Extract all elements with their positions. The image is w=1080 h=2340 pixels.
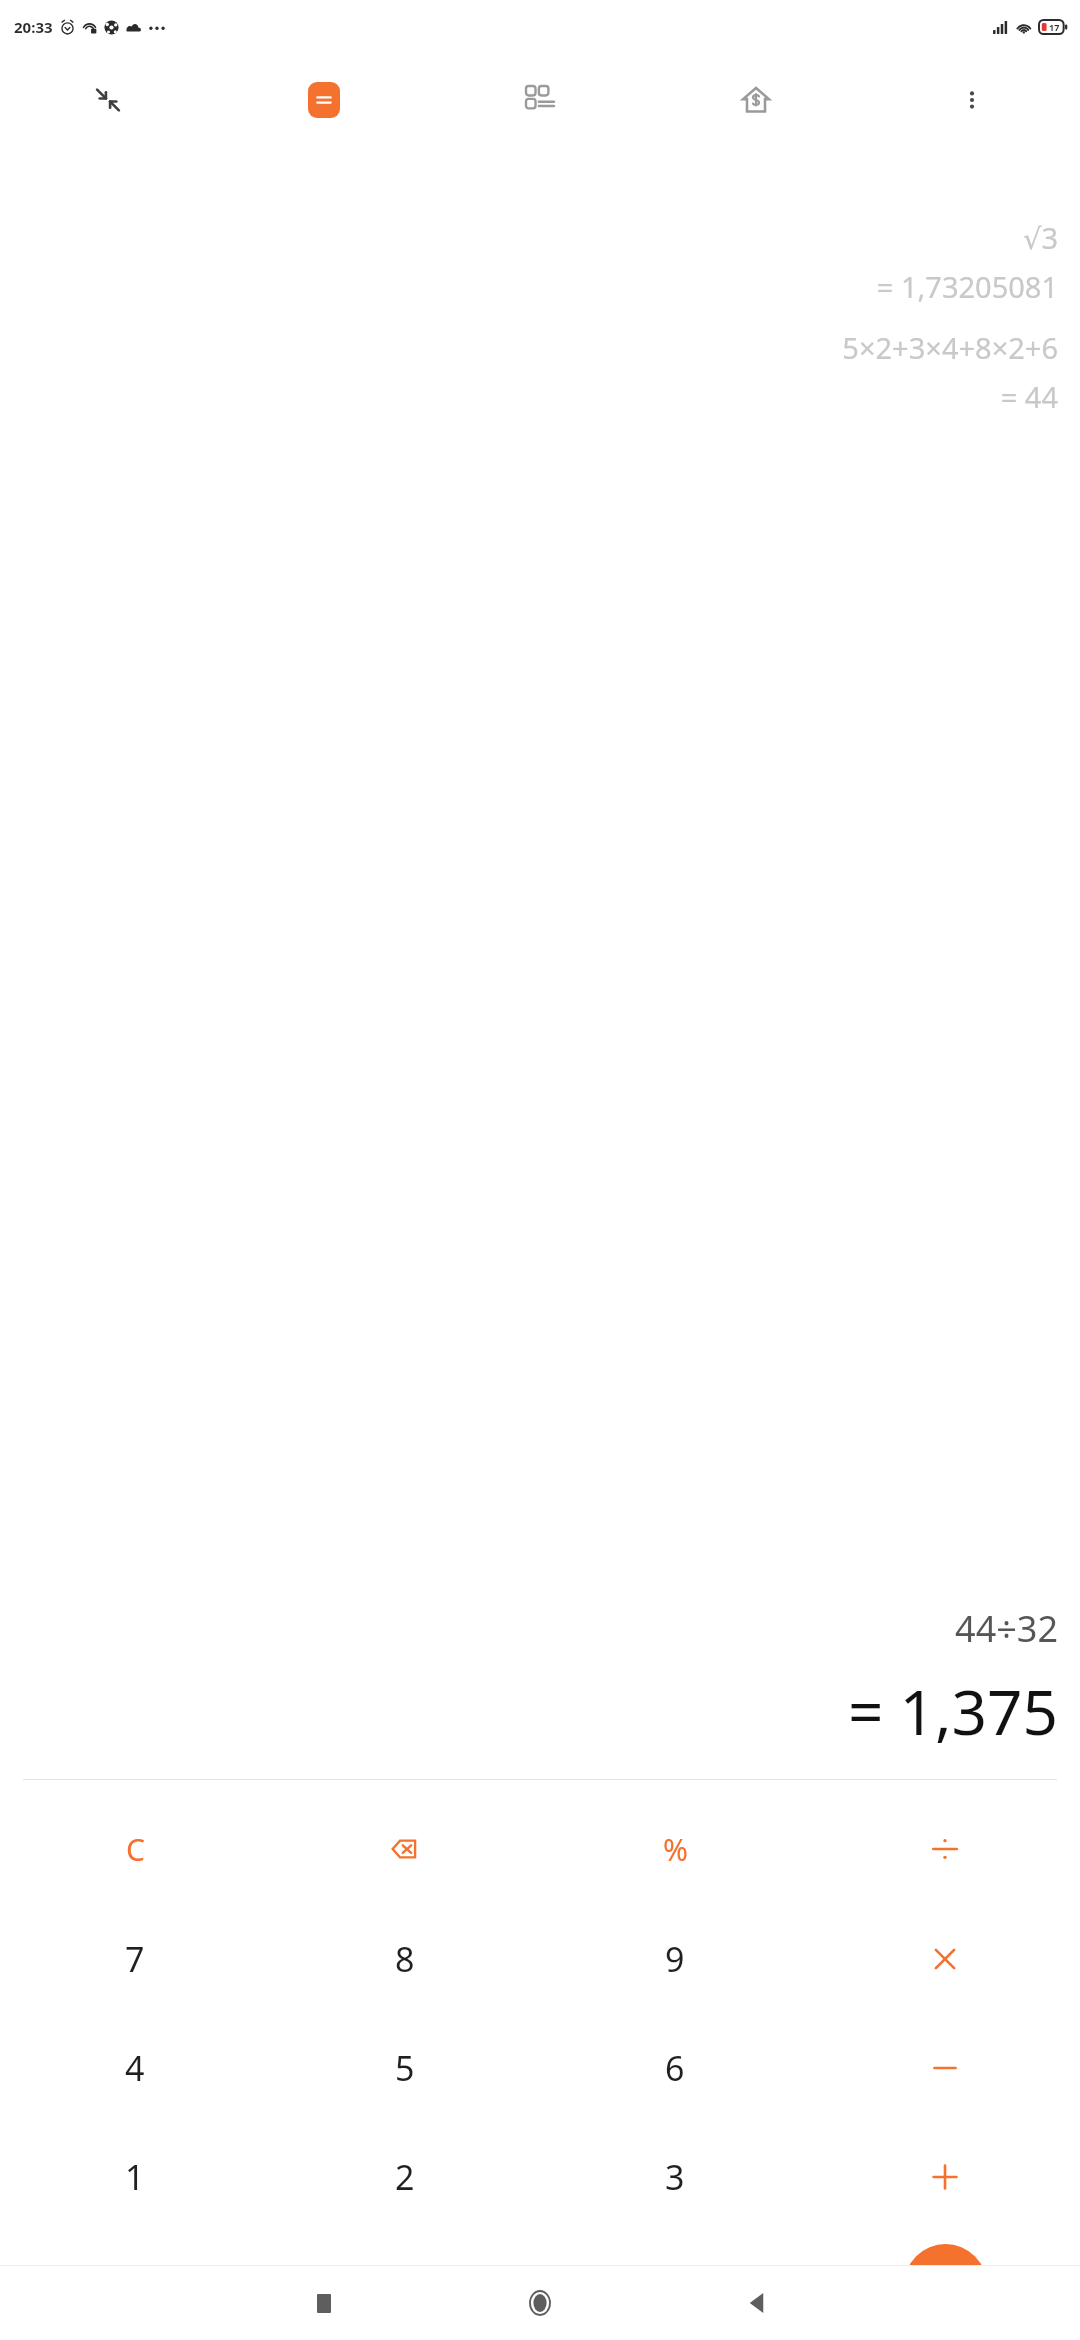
- staticText: 2: [395, 2154, 415, 2200]
- button[interactable]: 9: [540, 1904, 810, 2013]
- button[interactable]: Calculator: [216, 54, 432, 146]
- button[interactable]: 3: [540, 2122, 810, 2231]
- staticText: 4: [125, 2045, 145, 2091]
- staticText: 17: [1049, 21, 1060, 33]
- staticText: %: [663, 1829, 688, 1870]
- button[interactable]: %: [540, 1794, 810, 1904]
- staticText: = 1,375: [847, 1669, 1058, 1753]
- button[interactable]: Equals: [904, 2244, 987, 2327]
- button[interactable]: 4: [0, 2013, 270, 2122]
- staticText: 5: [395, 2045, 415, 2091]
- button[interactable]: Unit converter: [432, 54, 648, 146]
- staticText: 20:33: [14, 17, 53, 37]
- button[interactable]: 8: [270, 1904, 540, 2013]
- button[interactable]: 7: [0, 1904, 270, 2013]
- button[interactable]: More options: [864, 54, 1080, 146]
- button[interactable]: Home: [432, 2266, 648, 2340]
- button[interactable]: Divide: [810, 1794, 1080, 1904]
- button[interactable]: 6: [540, 2013, 810, 2122]
- staticText: 7: [125, 1936, 145, 1982]
- staticText: 5×2+3×4+8×2+6: [842, 328, 1058, 367]
- button[interactable]: Plus: [810, 2122, 1080, 2231]
- staticText: √3: [1022, 218, 1058, 257]
- button[interactable]: 5: [270, 2013, 540, 2122]
- button[interactable]: 2: [270, 2122, 540, 2231]
- staticText: 44÷32: [955, 1604, 1058, 1653]
- button[interactable]: Backspace: [270, 1794, 540, 1904]
- staticText: 6: [665, 2045, 685, 2091]
- staticText: = 44: [1000, 377, 1058, 416]
- button[interactable]: Mortgage: [648, 54, 864, 146]
- staticText: 9: [665, 1936, 685, 1982]
- button[interactable]: ,: [540, 2231, 810, 2340]
- staticText: C: [126, 1829, 145, 1870]
- button[interactable]: Recents: [216, 2266, 432, 2340]
- staticText: 1: [125, 2154, 145, 2200]
- button[interactable]: 0: [270, 2231, 540, 2340]
- button[interactable]: C: [0, 1794, 270, 1904]
- button[interactable]: Minus: [810, 2013, 1080, 2122]
- staticText: 8: [395, 1936, 415, 1982]
- staticText: 3: [665, 2154, 685, 2200]
- button[interactable]: Back: [648, 2266, 864, 2340]
- staticText: = 1,73205081: [876, 267, 1058, 306]
- button[interactable]: Collapse: [0, 54, 216, 146]
- button[interactable]: Multiply: [810, 1904, 1080, 2013]
- button[interactable]: 1: [0, 2122, 270, 2231]
